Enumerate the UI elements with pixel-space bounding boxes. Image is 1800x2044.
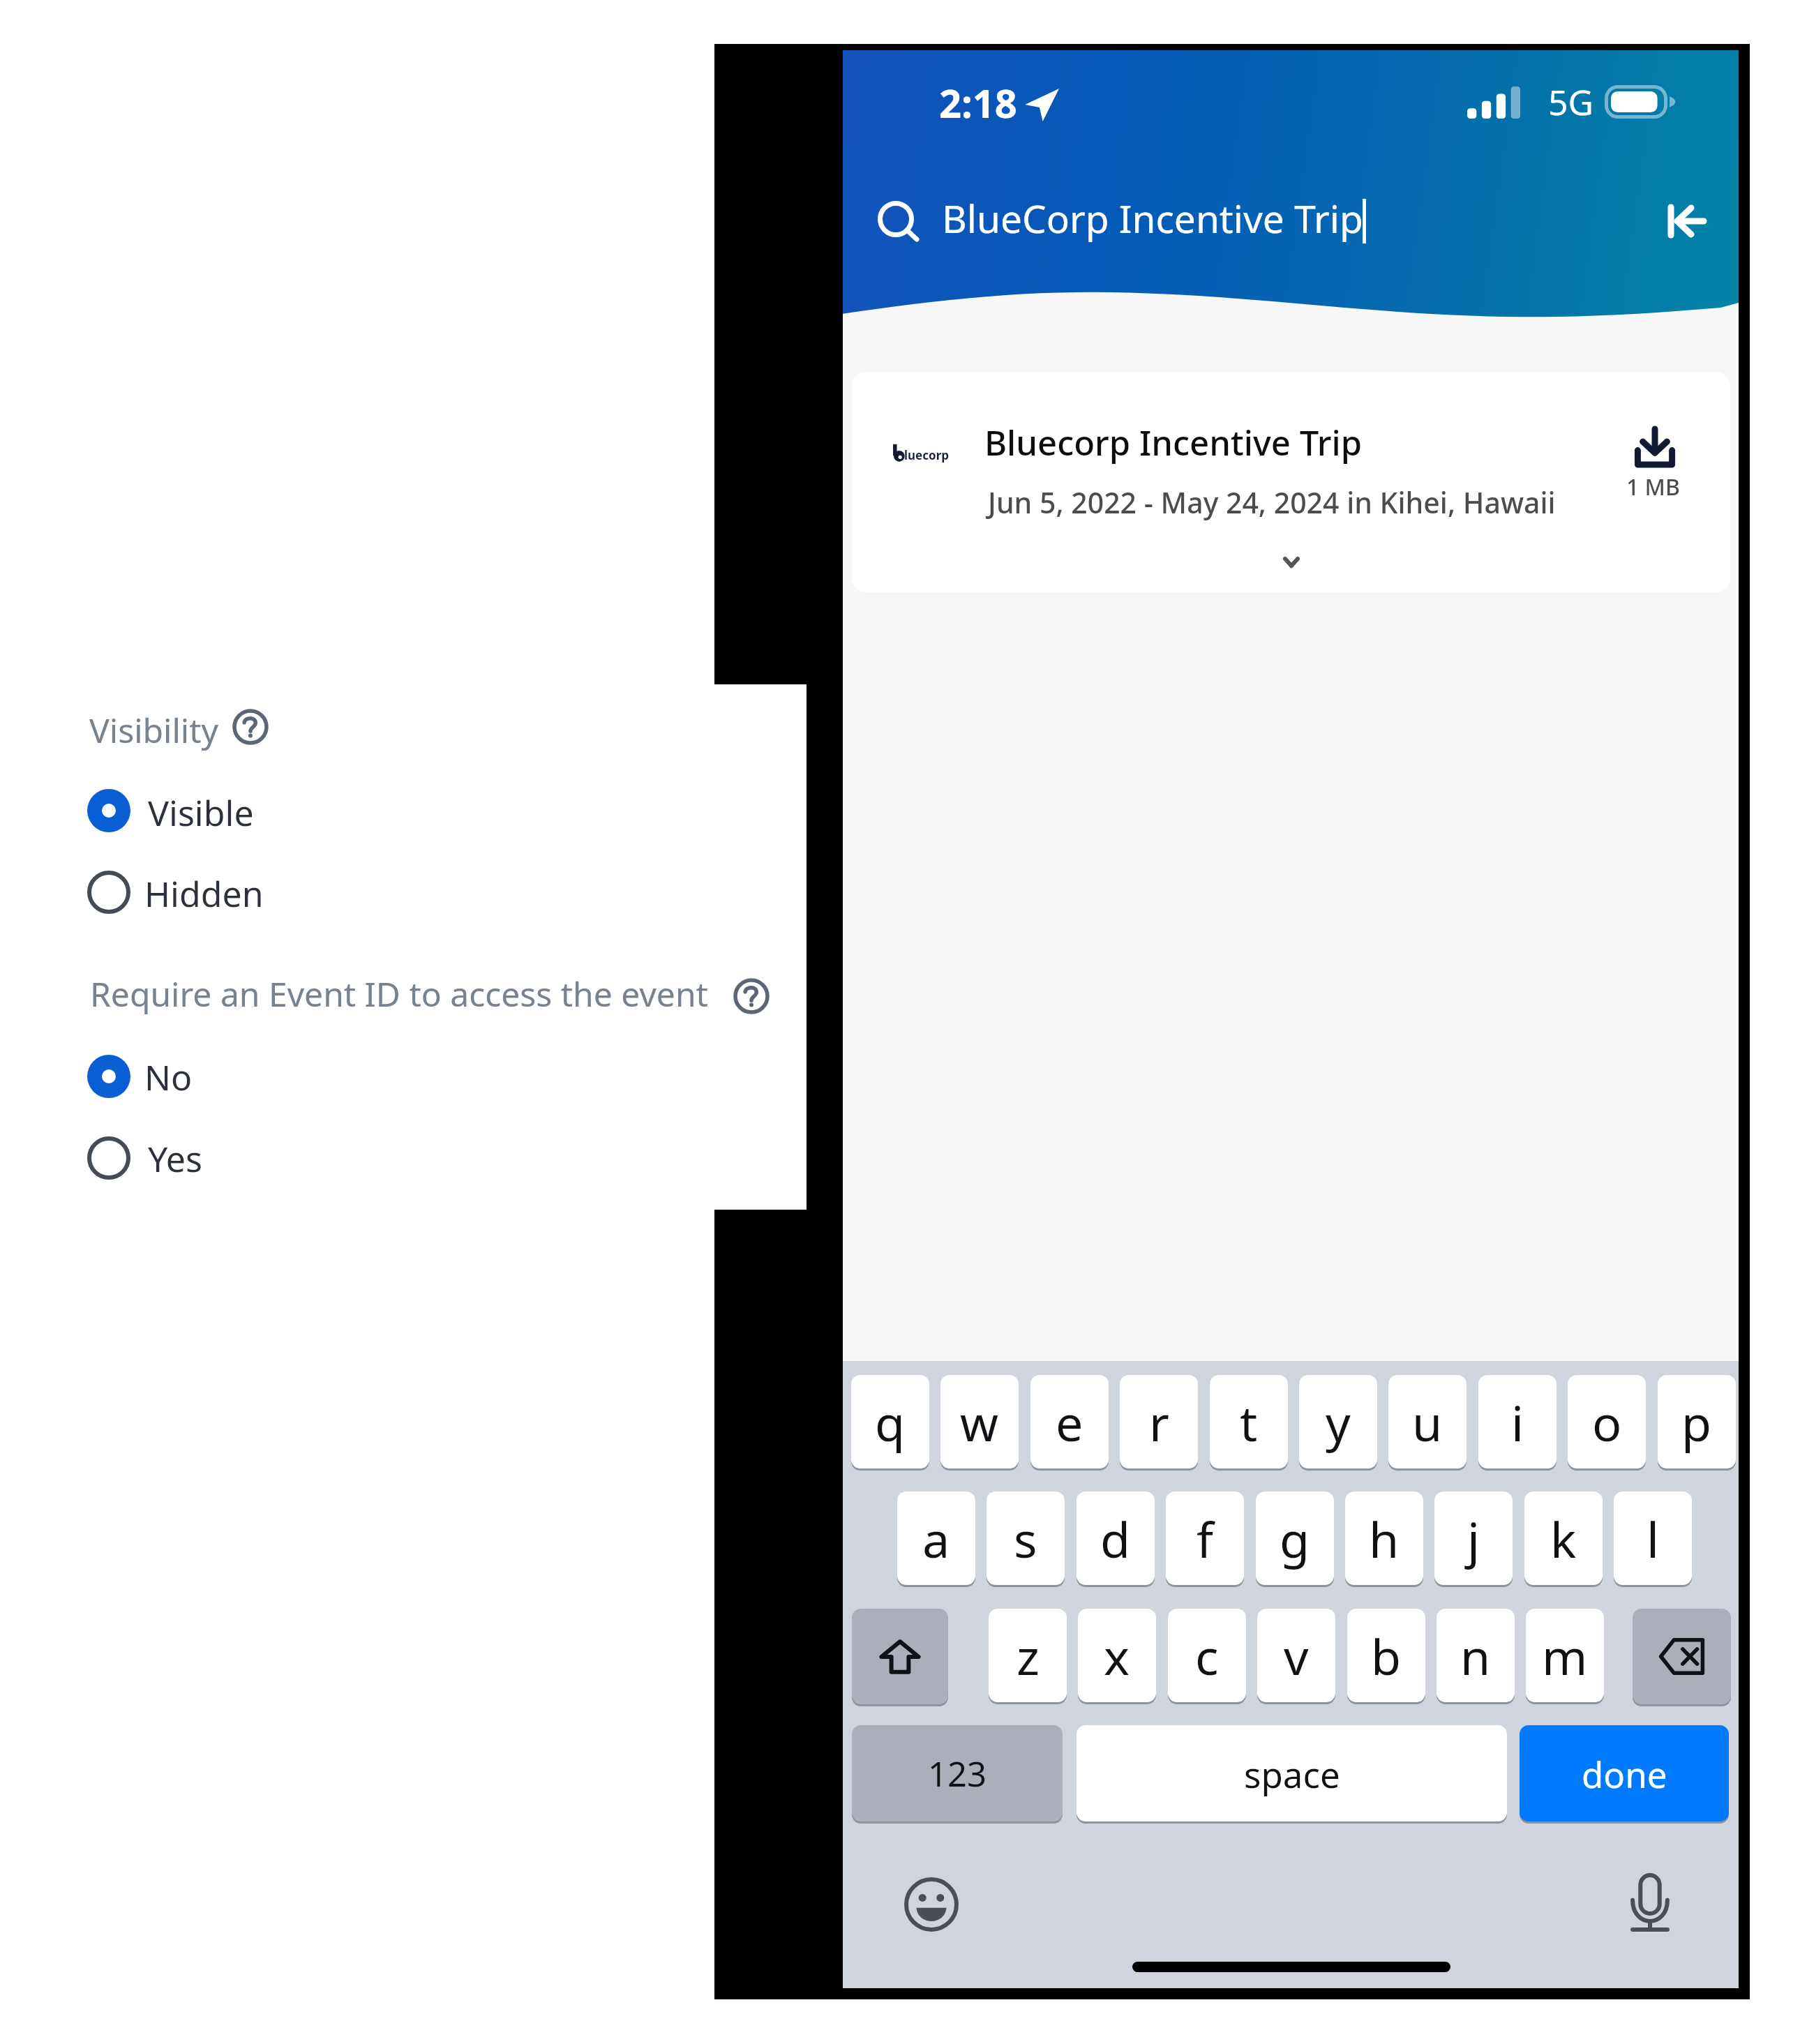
staticText: c: [1195, 1623, 1219, 1689]
button[interactable]: l: [1614, 1491, 1692, 1585]
staticText: j: [1467, 1505, 1480, 1572]
button[interactable]: Backspace: [1633, 1609, 1731, 1704]
staticText: Visibility: [89, 707, 219, 753]
button[interactable]: Yes: [87, 1126, 380, 1190]
button[interactable]: Collapse search: [1651, 185, 1723, 257]
staticText: Hidden: [144, 870, 264, 917]
staticText: done: [1582, 1750, 1667, 1798]
staticText: z: [1017, 1623, 1040, 1689]
button[interactable]: n: [1437, 1609, 1515, 1702]
button[interactable]: e: [1030, 1375, 1109, 1468]
button[interactable]: k: [1524, 1491, 1603, 1585]
button[interactable]: v: [1257, 1609, 1335, 1702]
button[interactable]: No: [87, 1044, 380, 1109]
staticText: luecorp: [904, 447, 950, 463]
staticText: e: [1056, 1389, 1083, 1455]
button[interactable]: j: [1434, 1491, 1513, 1585]
button[interactable]: u: [1388, 1375, 1467, 1468]
staticText: Jun 5, 2022 - May 24, 2024 in Kihei, Haw…: [988, 483, 1556, 522]
other: Search: [878, 201, 920, 243]
staticText: No: [144, 1053, 193, 1101]
button[interactable]: Emoji keyboard: [903, 1877, 959, 1932]
button[interactable]: Done: [1520, 1725, 1729, 1821]
button[interactable]: s: [987, 1491, 1065, 1585]
staticText: x: [1104, 1623, 1130, 1689]
staticText: f: [1197, 1505, 1214, 1572]
staticText: i: [1511, 1389, 1524, 1455]
button[interactable]: Shift: [852, 1609, 948, 1704]
staticText: 123: [928, 1750, 987, 1797]
staticText: b: [1371, 1623, 1402, 1689]
staticText: Visible: [148, 789, 254, 836]
button[interactable]: t: [1210, 1375, 1288, 1468]
staticText: v: [1284, 1623, 1309, 1689]
button[interactable]: r: [1120, 1375, 1198, 1468]
staticText: m: [1542, 1623, 1588, 1689]
button[interactable]: w: [940, 1375, 1019, 1468]
staticText: space: [1244, 1750, 1340, 1798]
staticText: o: [1592, 1389, 1622, 1455]
button[interactable]: Download: [1623, 419, 1687, 509]
staticText: p: [1681, 1389, 1712, 1455]
button[interactable]: a: [897, 1491, 975, 1585]
staticText: y: [1326, 1389, 1351, 1455]
staticText: w: [960, 1389, 999, 1455]
button[interactable]: i: [1478, 1375, 1557, 1468]
button[interactable]: g: [1256, 1491, 1334, 1585]
staticText: l: [1647, 1505, 1660, 1572]
button[interactable]: f: [1166, 1491, 1244, 1585]
button[interactable]: Visible: [87, 779, 380, 843]
button[interactable]: Dictate: [1630, 1873, 1670, 1932]
staticText: n: [1460, 1623, 1491, 1689]
staticText: r: [1149, 1389, 1169, 1455]
staticText: 1 MB: [1626, 472, 1680, 502]
button[interactable]: b: [1347, 1609, 1425, 1702]
button[interactable]: p: [1658, 1375, 1736, 1468]
staticText: h: [1369, 1505, 1400, 1572]
staticText: Require an Event ID to access the event: [90, 971, 708, 1016]
staticText: g: [1280, 1505, 1310, 1572]
staticText: d: [1100, 1505, 1131, 1572]
button[interactable]: y: [1299, 1375, 1377, 1468]
button[interactable]: Space: [1077, 1725, 1507, 1821]
staticText: Bluecorp Incentive Trip: [984, 419, 1363, 466]
staticText: BlueCorp Incentive Trip: [942, 192, 1363, 244]
staticText: 2:18: [939, 76, 1017, 129]
button[interactable]: Numbers: [852, 1725, 1063, 1821]
button[interactable]: Hidden: [87, 860, 380, 924]
staticText: u: [1412, 1389, 1443, 1455]
button[interactable]: z: [989, 1609, 1067, 1702]
staticText: 5G: [1548, 78, 1593, 126]
staticText: Yes: [148, 1135, 202, 1182]
button[interactable]: d: [1077, 1491, 1155, 1585]
button[interactable]: q: [851, 1375, 929, 1468]
button[interactable]: luecorp: [852, 372, 1730, 592]
staticText: a: [922, 1505, 950, 1572]
button[interactable]: c: [1168, 1609, 1246, 1702]
staticText: t: [1240, 1389, 1258, 1455]
staticText: k: [1550, 1505, 1577, 1572]
staticText: q: [875, 1389, 906, 1455]
staticText: s: [1014, 1505, 1037, 1572]
button[interactable]: h: [1345, 1491, 1423, 1585]
button[interactable]: x: [1078, 1609, 1156, 1702]
button[interactable]: o: [1568, 1375, 1646, 1468]
button[interactable]: m: [1526, 1609, 1604, 1702]
button[interactable]: Expand details: [1270, 541, 1312, 583]
